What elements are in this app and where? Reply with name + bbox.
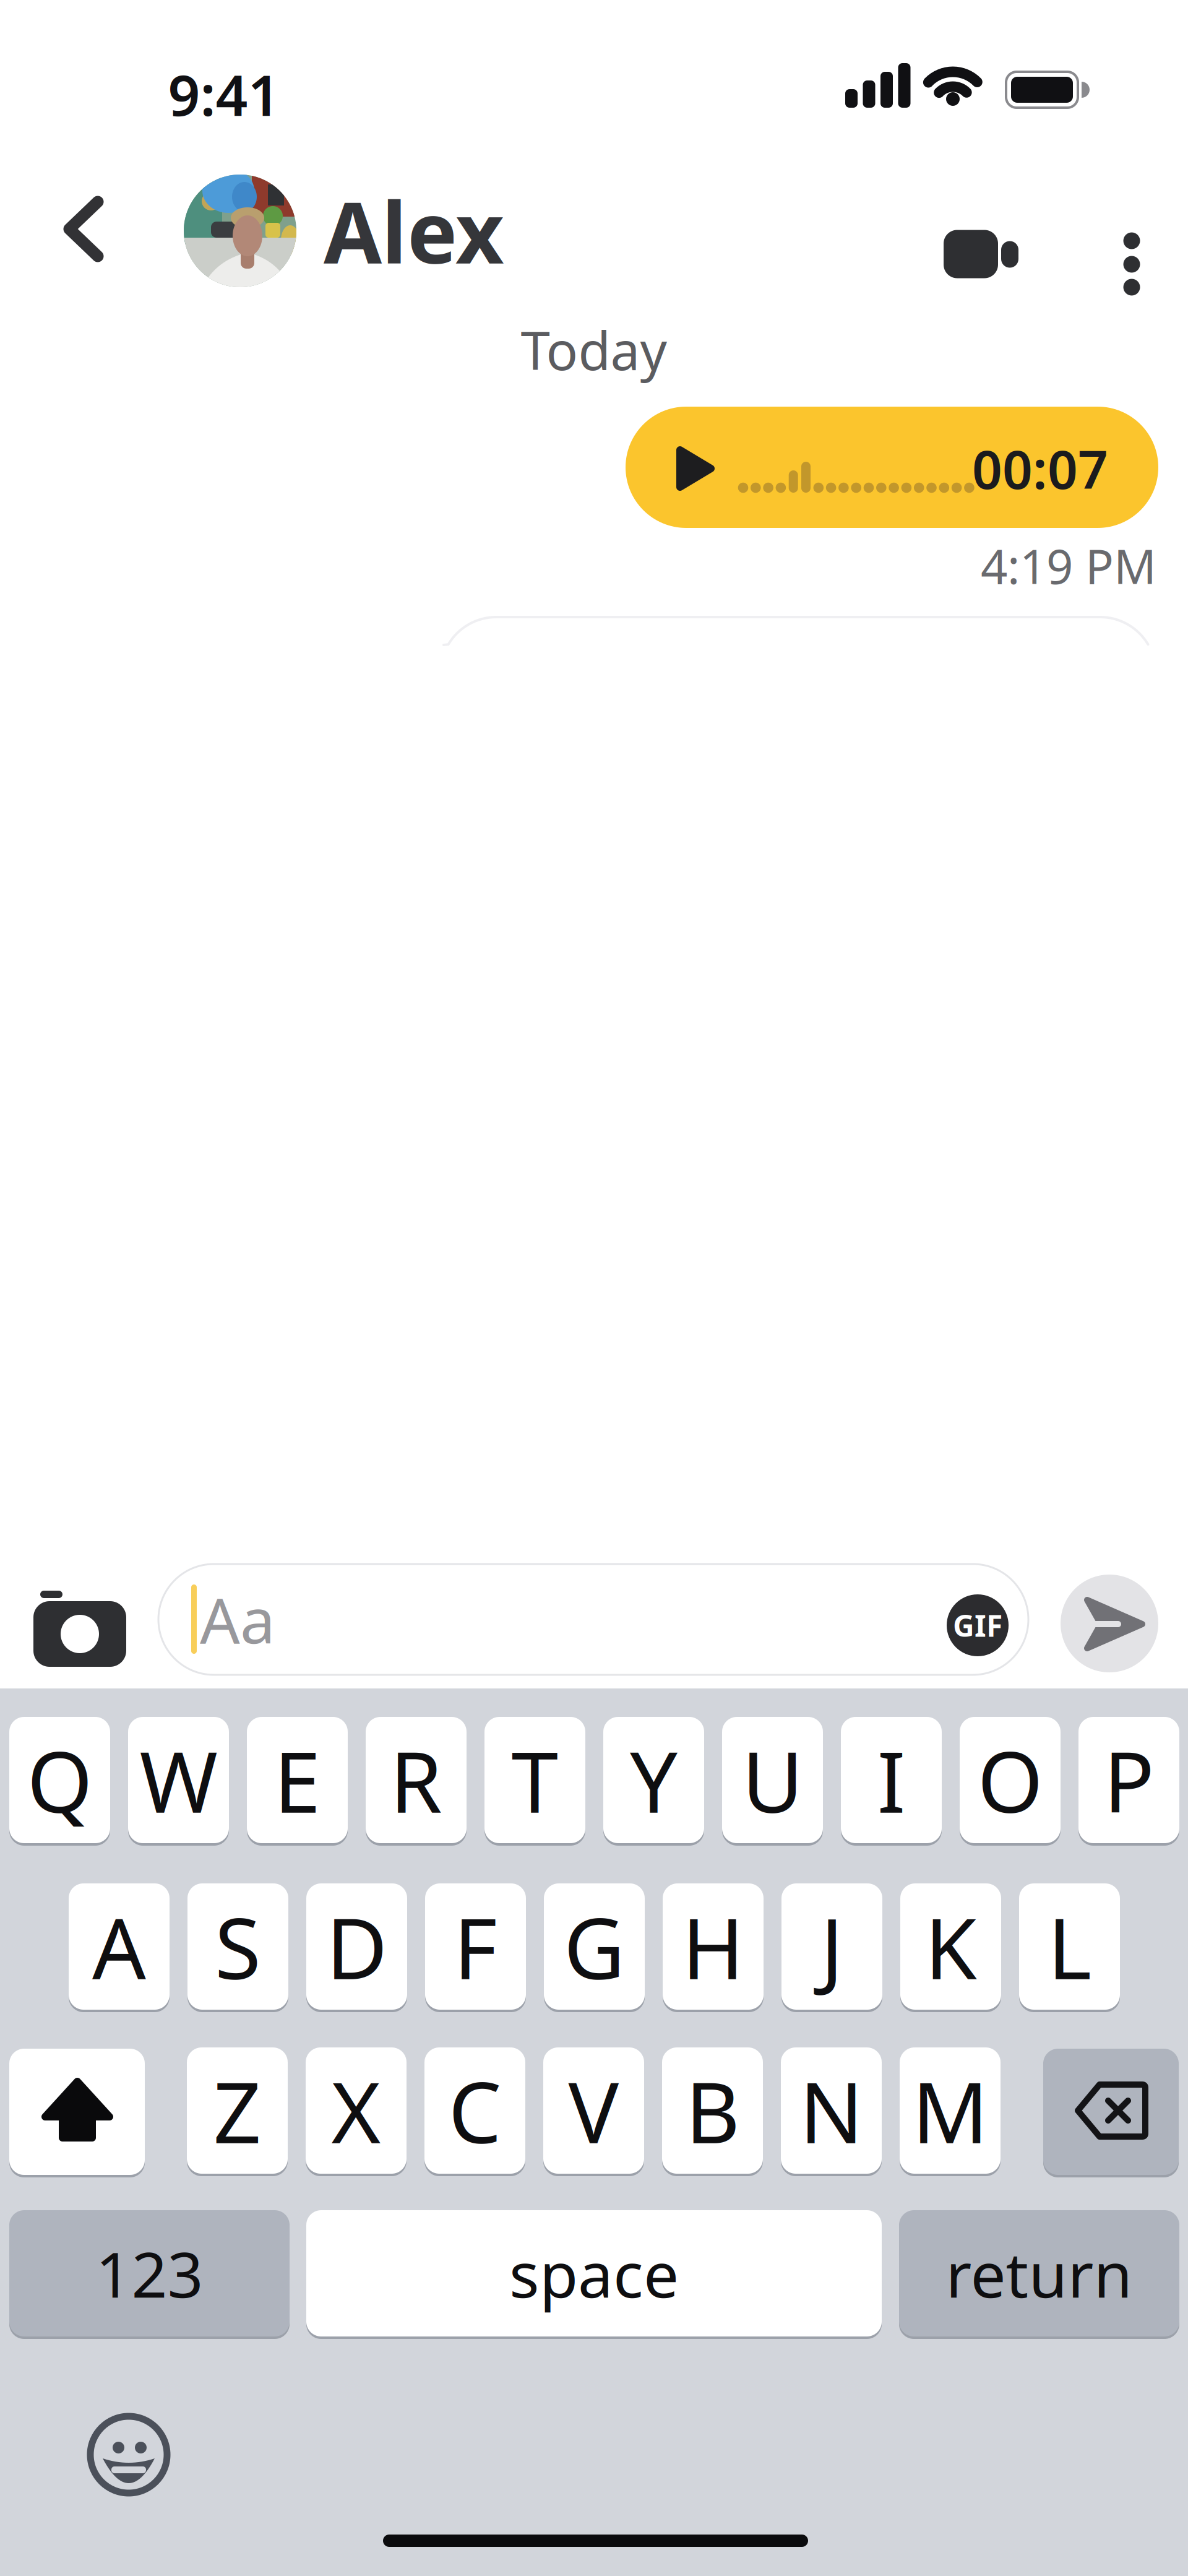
button[interactable]: Delete xyxy=(1043,2047,1179,2176)
button[interactable]: Shift xyxy=(9,2047,145,2176)
staticText: GIF xyxy=(953,1606,1002,1645)
button[interactable]: Y xyxy=(603,1717,704,1846)
staticText: space xyxy=(509,2232,679,2315)
staticText: Aa xyxy=(200,1577,275,1661)
staticText: Q xyxy=(27,1724,93,1836)
button[interactable]: I xyxy=(841,1717,942,1846)
staticText: Today xyxy=(521,315,667,385)
staticText: Alex xyxy=(324,175,504,287)
button[interactable]: N xyxy=(781,2047,882,2176)
staticText: A xyxy=(92,1891,146,2002)
staticText: R xyxy=(390,1724,442,1836)
staticText: P xyxy=(1104,1724,1154,1836)
staticText: B xyxy=(685,2055,740,2166)
button[interactable]: J xyxy=(781,1883,882,2012)
staticText: I xyxy=(877,1724,906,1836)
staticText: K xyxy=(925,1891,977,2002)
button[interactable]: Aa xyxy=(158,1564,1028,1675)
button[interactable]: Z xyxy=(187,2047,288,2176)
staticText: F xyxy=(454,1891,497,2002)
staticText: N xyxy=(799,2055,863,2166)
staticText: X xyxy=(331,2055,381,2166)
staticText: 4:19 PM xyxy=(981,534,1156,597)
button[interactable]: W xyxy=(128,1717,229,1846)
staticText: Z xyxy=(213,2055,261,2166)
button[interactable]: R xyxy=(366,1717,467,1846)
staticText: L xyxy=(1048,1891,1091,2002)
button[interactable]: More options xyxy=(1066,186,1140,273)
button[interactable]: A xyxy=(69,1883,170,2012)
staticText: S xyxy=(215,1891,261,2002)
button[interactable]: V xyxy=(543,2047,644,2176)
button[interactable]: X xyxy=(306,2047,407,2176)
staticText: 123 xyxy=(96,2232,203,2315)
button[interactable]: space xyxy=(306,2210,882,2339)
button[interactable]: L xyxy=(1019,1883,1120,2012)
staticText: return xyxy=(946,2232,1133,2315)
button[interactable]: Back xyxy=(51,186,125,273)
button[interactable]: P xyxy=(1078,1717,1179,1846)
button[interactable]: B xyxy=(662,2047,763,2176)
button[interactable]: return xyxy=(899,2210,1179,2339)
button[interactable]: H xyxy=(663,1883,764,2012)
staticText: W xyxy=(140,1724,217,1836)
button[interactable]: Q xyxy=(9,1717,110,1846)
button[interactable]: M xyxy=(900,2047,1001,2176)
button[interactable]: K xyxy=(900,1883,1001,2012)
staticText: G xyxy=(564,1891,625,2002)
staticText: E xyxy=(274,1724,321,1836)
button[interactable]: D xyxy=(306,1883,407,2012)
staticText: M xyxy=(912,2055,988,2166)
button[interactable]: Video call xyxy=(900,183,1005,279)
button[interactable]: G xyxy=(544,1883,645,2012)
button[interactable]: Emoji xyxy=(88,2414,170,2496)
staticText: T xyxy=(511,1724,558,1836)
staticText: O xyxy=(977,1724,1043,1836)
button[interactable]: Send xyxy=(1061,1575,1158,1672)
button[interactable]: Alex xyxy=(184,175,504,287)
staticText: U xyxy=(742,1724,803,1836)
staticText: Y xyxy=(630,1724,678,1836)
button[interactable]: O xyxy=(960,1717,1061,1846)
staticText: J xyxy=(820,1891,843,2002)
staticText: 9:41 xyxy=(168,57,280,131)
button[interactable]: Camera xyxy=(33,1575,126,1662)
staticText: D xyxy=(326,1891,387,2002)
button[interactable]: Play voice message, 7 seconds xyxy=(626,407,1158,528)
staticText: H xyxy=(682,1891,744,2002)
staticText: 00:07 xyxy=(972,433,1108,504)
button[interactable]: E xyxy=(247,1717,348,1846)
button[interactable]: F xyxy=(425,1883,526,2012)
button[interactable]: 123 xyxy=(9,2210,290,2339)
button[interactable]: C xyxy=(424,2047,525,2176)
button[interactable]: GIF xyxy=(947,1594,1009,1656)
button[interactable]: S xyxy=(187,1883,288,2012)
staticText: V xyxy=(568,2055,619,2166)
button[interactable]: U xyxy=(722,1717,823,1846)
staticText: C xyxy=(448,2055,501,2166)
button[interactable]: T xyxy=(484,1717,585,1846)
